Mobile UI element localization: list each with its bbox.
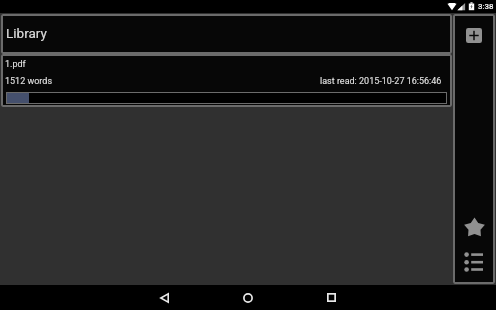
button[interactable]: Favourites — [459, 212, 489, 242]
staticText: 1.pdf — [5, 59, 26, 70]
staticText: 1512 words — [5, 76, 53, 87]
button[interactable]: All documents — [458, 247, 488, 277]
button[interactable]: Add book — [460, 22, 487, 49]
button[interactable]: Library — [1, 14, 452, 54]
staticText: Library — [6, 25, 47, 41]
button[interactable]: Home — [232, 285, 263, 310]
staticText: last read: 2015-10-27 16:56:46 — [320, 76, 442, 87]
button[interactable]: Recent apps — [316, 285, 347, 310]
staticText: 3:38 — [478, 2, 494, 11]
button[interactable]: Back — [149, 285, 180, 310]
button[interactable]: 1.pdf — [1, 54, 452, 107]
